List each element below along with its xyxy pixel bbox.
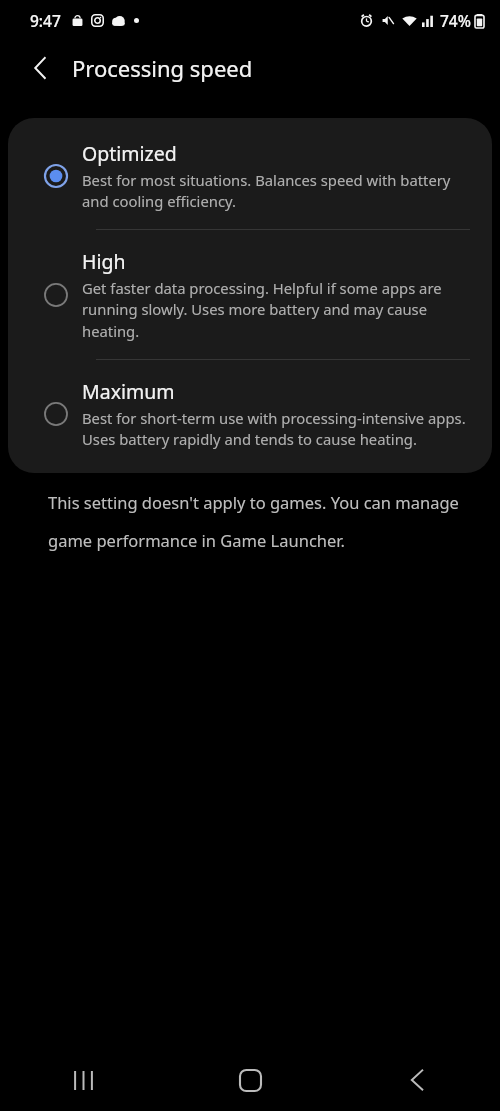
staticText: 9:47	[30, 10, 61, 31]
staticText: 74%	[440, 10, 471, 31]
staticText: High	[82, 248, 126, 275]
button[interactable]: Recent apps	[56, 1053, 110, 1107]
button[interactable]: High	[8, 230, 492, 359]
staticText: Optimized	[82, 140, 177, 167]
staticText: Maximum	[82, 378, 175, 405]
button[interactable]: Back	[18, 45, 64, 91]
staticText: This setting doesn't apply to games. You…	[48, 491, 466, 552]
button[interactable]: Back	[390, 1053, 444, 1107]
staticText: Best for most situations. Balances speed…	[82, 170, 472, 211]
button[interactable]: Optimized	[8, 118, 492, 229]
staticText: Best for short-term use with processing-…	[82, 408, 472, 449]
staticText: Get faster data processing. Helpful if s…	[82, 278, 472, 341]
staticText: Processing speed	[72, 53, 253, 83]
button[interactable]: Maximum	[8, 360, 492, 473]
button[interactable]: Home	[223, 1053, 277, 1107]
